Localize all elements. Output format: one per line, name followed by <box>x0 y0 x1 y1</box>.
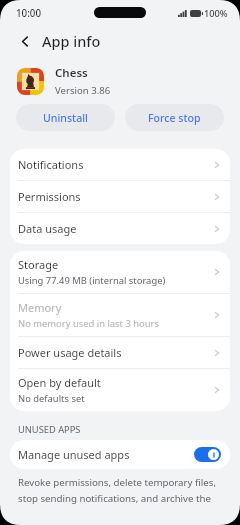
button[interactable]: Memory <box>10 294 230 336</box>
staticText: Manage unused apps <box>18 447 194 462</box>
button[interactable]: Storage <box>10 251 230 293</box>
button[interactable]: Power usage details <box>10 337 230 368</box>
staticText: Revoke permissions, delete temporary fil… <box>18 476 217 489</box>
staticText: Open by default <box>18 375 101 390</box>
staticText: Power usage details <box>18 345 122 360</box>
staticText: Force stop <box>148 111 201 125</box>
staticText: stop sending notifications, and archive … <box>18 492 211 505</box>
button[interactable]: Notifications <box>10 149 230 180</box>
staticText: Storage <box>18 257 59 272</box>
staticText: Data usage <box>18 221 77 236</box>
staticText: Uninstall <box>43 111 88 125</box>
staticText: UNUSED APPS <box>18 423 81 436</box>
button[interactable]: Data usage <box>10 213 230 244</box>
button[interactable]: Open by default <box>10 369 230 411</box>
button[interactable]: Back <box>13 29 37 53</box>
staticText: Version 3.86 <box>55 84 111 97</box>
button[interactable]: Uninstall <box>16 104 115 131</box>
staticText: App info <box>42 31 101 51</box>
staticText: No memory used in last 3 hours <box>18 317 159 330</box>
button[interactable]: Manage unused apps <box>10 440 230 469</box>
staticText: Notifications <box>18 157 84 172</box>
staticText: Using 77.49 MB (internal storage) <box>18 274 166 287</box>
staticText: Chess <box>55 65 88 81</box>
button[interactable]: Force stop <box>125 104 224 131</box>
staticText: Memory <box>18 300 62 315</box>
other: Manage unused apps toggle <box>194 447 221 462</box>
staticText: Permissions <box>18 189 81 204</box>
staticText: No defaults set <box>18 392 85 405</box>
staticText: 10:00 <box>16 7 42 20</box>
button[interactable]: Permissions <box>10 181 230 212</box>
staticText: 100% <box>204 7 228 20</box>
